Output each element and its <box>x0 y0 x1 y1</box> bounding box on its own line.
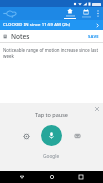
staticText: Google <box>43 153 60 160</box>
button[interactable]: Recent apps <box>74 171 88 183</box>
button[interactable]: More options <box>93 7 102 20</box>
button[interactable]: Settings <box>20 130 32 142</box>
button[interactable]: Back <box>15 171 29 183</box>
button[interactable]: Home <box>45 171 59 183</box>
button[interactable]: SAVE <box>86 32 101 42</box>
button[interactable]: CLOCKED IN since 11:59 AM (2h) <box>0 20 103 30</box>
staticText: Notes <box>11 32 30 41</box>
button[interactable]: Microphone, tap to pause <box>41 125 62 146</box>
button[interactable]: Keyboard <box>71 130 83 142</box>
button[interactable]: Schedule <box>79 7 93 20</box>
staticText: Tap to pause <box>35 111 68 118</box>
staticText: CLOCKED IN since 11:59 AM (2h) <box>3 22 71 28</box>
button[interactable]: Close <box>94 106 100 112</box>
button[interactable]: Noticeable range of motion increase sinc… <box>3 47 100 59</box>
button[interactable]: Home <box>63 7 77 20</box>
staticText: SAVE <box>88 34 99 40</box>
